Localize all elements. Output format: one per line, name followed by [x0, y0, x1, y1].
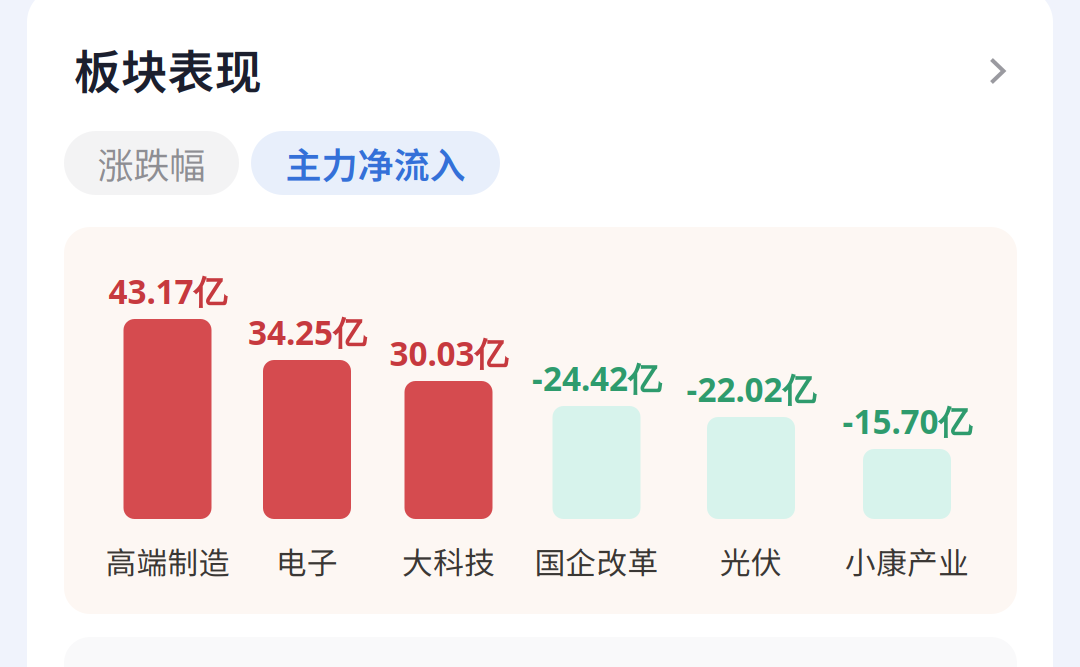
button[interactable]: 主力净流入 — [251, 131, 500, 195]
staticText: 小康产业 — [845, 539, 969, 583]
staticText: 主力净流入 — [285, 137, 465, 189]
button[interactable]: 涨跌幅 — [64, 131, 239, 195]
button[interactable]: -22.02亿 — [681, 233, 821, 608]
staticText: 国企改革 — [534, 539, 658, 583]
staticText: 涨跌幅 — [97, 137, 205, 189]
button[interactable]: -24.42亿 — [526, 233, 666, 608]
staticText: 大科技 — [402, 539, 495, 583]
button[interactable]: 板块表现 — [27, 10, 1053, 128]
staticText: 34.25亿 — [248, 309, 366, 355]
staticText: 板块表现 — [74, 35, 262, 103]
staticText: -22.02亿 — [686, 366, 815, 412]
button[interactable]: 43.17亿 — [97, 233, 237, 608]
staticText: 43.17亿 — [108, 268, 226, 314]
staticText: 电子 — [276, 539, 338, 583]
staticText: 高端制造 — [105, 539, 229, 583]
button[interactable]: -15.70亿 — [837, 233, 977, 608]
staticText: -15.70亿 — [842, 398, 971, 444]
staticText: 光伏 — [720, 539, 782, 583]
button[interactable]: 30.03亿 — [378, 233, 518, 608]
staticText: 30.03亿 — [389, 330, 507, 376]
button[interactable]: 34.25亿 — [237, 233, 377, 608]
staticText: -24.42亿 — [532, 355, 661, 401]
